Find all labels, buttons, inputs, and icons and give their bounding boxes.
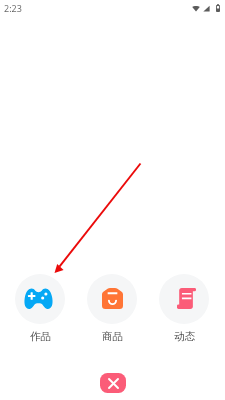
- button[interactable]: 作品: [14, 274, 66, 343]
- staticText: 商品: [102, 330, 123, 343]
- staticText: 动态: [174, 330, 195, 343]
- staticText: 作品: [30, 330, 51, 343]
- button[interactable]: Close: [100, 373, 126, 393]
- button[interactable]: 动态: [158, 274, 210, 343]
- button[interactable]: 商品: [86, 274, 138, 343]
- staticText: 2:23: [4, 2, 22, 14]
